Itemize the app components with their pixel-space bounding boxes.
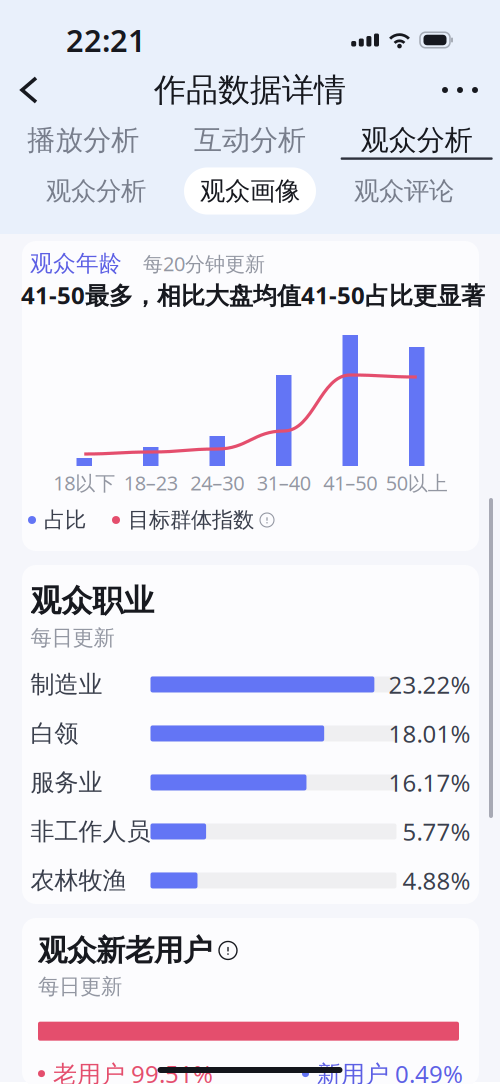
staticText: 16.17%	[388, 766, 470, 798]
staticText: 观众分析	[361, 123, 473, 157]
staticText: 新用户 0.49%	[317, 1058, 463, 1084]
staticText: 老用户 99.51%	[53, 1058, 213, 1084]
staticText: 41–50	[323, 469, 377, 496]
staticText: 目标群体指数	[128, 507, 254, 533]
staticText: 18.01%	[388, 717, 470, 749]
staticText: 观众评论	[354, 175, 454, 206]
staticText: 4.88%	[402, 864, 470, 896]
staticText: 每日更新	[38, 973, 122, 1000]
button[interactable]: 观众分析	[333, 112, 500, 168]
staticText: 观众年龄	[30, 250, 122, 277]
button[interactable]: 播放分析	[0, 112, 167, 168]
staticText: 50以上	[386, 469, 448, 496]
button[interactable]: 观众画像	[184, 167, 316, 214]
staticText: 观众画像	[200, 175, 300, 206]
staticText: 22:21	[66, 20, 146, 60]
staticText: 观众职业	[30, 582, 154, 620]
staticText: 23.22%	[388, 668, 470, 700]
staticText: 制造业	[30, 670, 102, 699]
staticText: 每20分钟更新	[143, 250, 265, 277]
staticText: 观众分析	[46, 175, 146, 206]
staticText: 作品数据详情	[154, 70, 346, 110]
staticText: 24–30	[190, 469, 244, 496]
staticText: 每日更新	[30, 625, 114, 651]
staticText: 非工作人员	[30, 817, 150, 846]
staticText: 白领	[30, 719, 78, 748]
button[interactable]: 观众评论	[338, 167, 470, 214]
staticText: 41-50最多，相比大盘均值41-50占比更显著	[21, 279, 485, 311]
staticText: 18–23	[124, 469, 178, 496]
staticText: 互动分析	[194, 123, 306, 157]
button[interactable]: Back	[0, 68, 52, 112]
button[interactable]: More options	[426, 71, 500, 109]
staticText: 观众新老用户	[38, 932, 212, 968]
staticText: 农林牧渔	[30, 866, 126, 895]
staticText: 服务业	[30, 768, 102, 797]
staticText: 18以下	[53, 469, 115, 496]
staticText: 占比	[44, 507, 86, 533]
staticText: 播放分析	[27, 123, 139, 157]
button[interactable]: 互动分析	[167, 112, 333, 168]
button[interactable]: 观众分析	[30, 167, 162, 214]
staticText: 31–40	[257, 469, 311, 496]
staticText: 5.77%	[402, 815, 470, 847]
